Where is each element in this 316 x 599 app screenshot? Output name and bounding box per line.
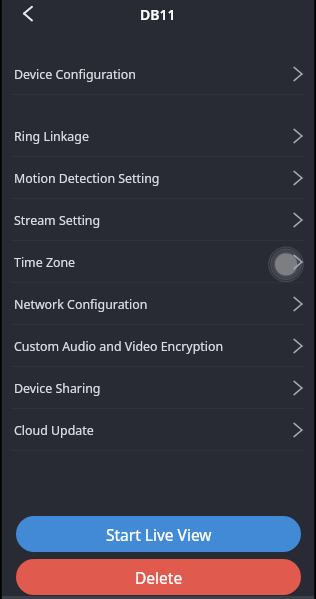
button[interactable]: Device Configuration <box>0 53 316 95</box>
staticText: Start Live View <box>106 524 212 545</box>
button[interactable]: Device Sharing <box>0 367 316 409</box>
button[interactable]: Cloud Update <box>0 409 316 451</box>
staticText: Device Sharing <box>14 380 101 397</box>
staticText: DB11 <box>140 5 176 24</box>
button[interactable]: Stream Setting <box>0 199 316 241</box>
button[interactable]: Delete <box>16 559 301 595</box>
staticText: Motion Detection Setting <box>14 170 160 187</box>
button[interactable]: Start Live View <box>16 516 301 552</box>
button[interactable]: Custom Audio and Video Encryption <box>0 325 316 367</box>
staticText: Custom Audio and Video Encryption <box>14 338 224 355</box>
staticText: Network Configuration <box>14 296 148 313</box>
button[interactable]: Motion Detection Setting <box>0 157 316 199</box>
button[interactable]: Time Zone <box>0 241 316 283</box>
staticText: Time Zone <box>14 254 76 271</box>
button[interactable]: Ring Linkage <box>0 115 316 157</box>
button[interactable]: Back <box>8 0 48 28</box>
button[interactable]: Network Configuration <box>0 283 316 325</box>
staticText: Stream Setting <box>14 212 101 229</box>
staticText: Delete <box>135 567 183 588</box>
staticText: Cloud Update <box>14 422 94 439</box>
staticText: Device Configuration <box>14 66 136 83</box>
staticText: Ring Linkage <box>14 128 89 145</box>
